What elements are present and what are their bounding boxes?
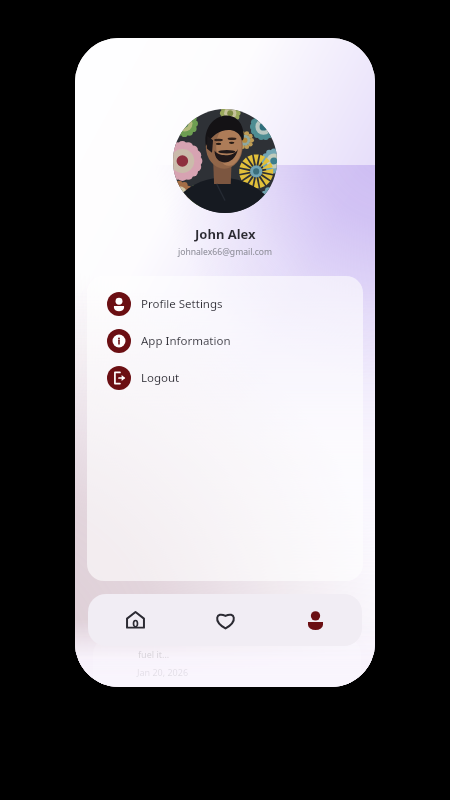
staticText: johnalex66@gmail.com <box>178 246 273 258</box>
staticText: App Information <box>141 333 231 349</box>
button[interactable]: App Information <box>87 322 363 359</box>
staticText: John Alex <box>195 225 256 243</box>
staticText: Jan 20, 2026 <box>137 666 189 678</box>
button[interactable]: Favorites <box>180 594 270 646</box>
button[interactable]: Profile <box>270 594 360 646</box>
staticText: fuel it... <box>138 648 170 660</box>
button[interactable]: Logout <box>87 359 363 396</box>
button[interactable]: Profile Settings <box>87 285 363 322</box>
button[interactable]: Home <box>90 594 180 646</box>
staticText: Logout <box>141 370 180 386</box>
staticText: Profile Settings <box>141 296 223 312</box>
